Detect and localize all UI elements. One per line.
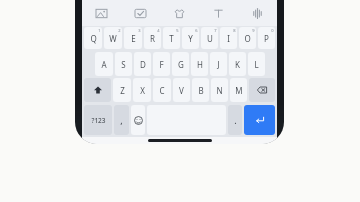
button[interactable]: S xyxy=(115,52,132,76)
staticText: L xyxy=(254,59,259,70)
button[interactable]: J xyxy=(210,52,227,76)
button[interactable]: , xyxy=(114,105,129,135)
staticText: K xyxy=(235,59,240,70)
button[interactable]: Enter xyxy=(244,105,275,135)
button[interactable]: Y xyxy=(182,27,199,49)
staticText: M xyxy=(235,85,243,96)
staticText: H xyxy=(197,59,203,70)
staticText: X xyxy=(140,85,145,96)
button[interactable]: Shift xyxy=(84,78,111,102)
button[interactable]: Q xyxy=(84,27,102,49)
button[interactable]: I xyxy=(220,27,237,49)
button[interactable]: ?123 xyxy=(84,105,112,135)
staticText: I xyxy=(227,33,230,44)
staticText: 4 xyxy=(157,28,160,33)
staticText: F xyxy=(159,59,164,70)
button[interactable]: Z xyxy=(113,78,131,102)
staticText: 3 xyxy=(138,28,141,33)
staticText: 7 xyxy=(214,28,217,33)
staticText: 6 xyxy=(195,28,198,33)
button[interactable]: Emoji xyxy=(131,105,145,135)
staticText: D xyxy=(140,59,146,70)
staticText: N xyxy=(216,85,223,96)
button[interactable]: R xyxy=(144,27,161,49)
staticText: B xyxy=(198,85,204,96)
staticText: Z xyxy=(120,85,125,96)
button[interactable]: Text style xyxy=(199,0,238,26)
staticText: Y xyxy=(188,33,193,44)
staticText: A xyxy=(101,59,107,70)
staticText: U xyxy=(207,33,213,44)
button[interactable]: M xyxy=(230,78,247,102)
button[interactable]: T xyxy=(163,27,180,49)
staticText: 0 xyxy=(271,28,274,33)
staticText: 5 xyxy=(176,28,179,33)
button[interactable]: G xyxy=(172,52,189,76)
button[interactable]: X xyxy=(133,78,151,102)
staticText: . xyxy=(234,114,237,126)
staticText: E xyxy=(131,33,136,44)
staticText: O xyxy=(244,33,251,44)
staticText: 2 xyxy=(118,28,121,33)
button[interactable]: N xyxy=(211,78,228,102)
button[interactable]: GIF xyxy=(160,0,199,26)
staticText: T xyxy=(169,33,174,44)
button[interactable]: D xyxy=(134,52,151,76)
button[interactable]: Backspace xyxy=(249,78,275,102)
staticText: G xyxy=(178,59,184,70)
button[interactable]: V xyxy=(173,78,190,102)
staticText: 1 xyxy=(98,28,101,33)
button[interactable]: U xyxy=(201,27,218,49)
staticText: W xyxy=(109,33,117,44)
staticText: 8 xyxy=(233,28,236,33)
button[interactable]: L xyxy=(248,52,265,76)
button[interactable]: P xyxy=(258,27,275,49)
button[interactable]: C xyxy=(153,78,171,102)
staticText: Q xyxy=(90,33,97,44)
button[interactable]: Stickers xyxy=(121,0,160,26)
staticText: J xyxy=(217,59,220,70)
button[interactable]: Voice input xyxy=(238,0,277,26)
button[interactable]: E xyxy=(124,27,142,49)
staticText: V xyxy=(179,85,184,96)
button[interactable]: W xyxy=(104,27,122,49)
staticText: P xyxy=(264,33,269,44)
button[interactable]: F xyxy=(153,52,170,76)
staticText: S xyxy=(121,59,126,70)
staticText: C xyxy=(159,85,165,96)
staticText: ?123 xyxy=(91,116,106,125)
button[interactable]: K xyxy=(229,52,246,76)
button[interactable]: . xyxy=(228,105,242,135)
staticText: 9 xyxy=(252,28,255,33)
staticText: R xyxy=(150,33,155,44)
button[interactable]: Insert image xyxy=(82,0,121,26)
staticText: , xyxy=(120,114,123,126)
button[interactable]: O xyxy=(239,27,256,49)
button[interactable]: B xyxy=(192,78,209,102)
button[interactable]: H xyxy=(191,52,208,76)
button[interactable]: A xyxy=(95,52,113,76)
